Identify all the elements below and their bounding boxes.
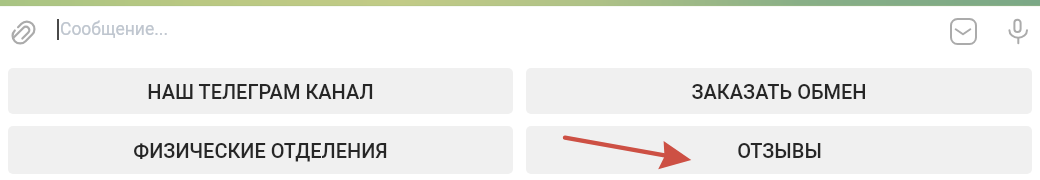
button[interactable]: Record voice message bbox=[1000, 10, 1040, 50]
staticText: ОТЗЫВЫ bbox=[737, 139, 822, 162]
staticText: НАШ ТЕЛЕГРАМ КАНАЛ bbox=[147, 80, 374, 103]
button[interactable]: Attach file bbox=[6, 15, 41, 50]
button[interactable]: Hide keyboard bbox=[941, 9, 985, 53]
button[interactable]: НАШ ТЕЛЕГРАМ КАНАЛ bbox=[8, 68, 513, 114]
button[interactable]: ФИЗИЧЕСКИЕ ОТДЕЛЕНИЯ bbox=[8, 126, 513, 174]
staticText: ФИЗИЧЕСКИЕ ОТДЕЛЕНИЯ bbox=[133, 139, 388, 162]
staticText: Сообщение... bbox=[60, 19, 169, 40]
button[interactable]: ЗАКАЗАТЬ ОБМЕН bbox=[526, 68, 1032, 114]
staticText: ЗАКАЗАТЬ ОБМЕН bbox=[691, 80, 867, 103]
button[interactable]: ОТЗЫВЫ bbox=[526, 126, 1032, 174]
